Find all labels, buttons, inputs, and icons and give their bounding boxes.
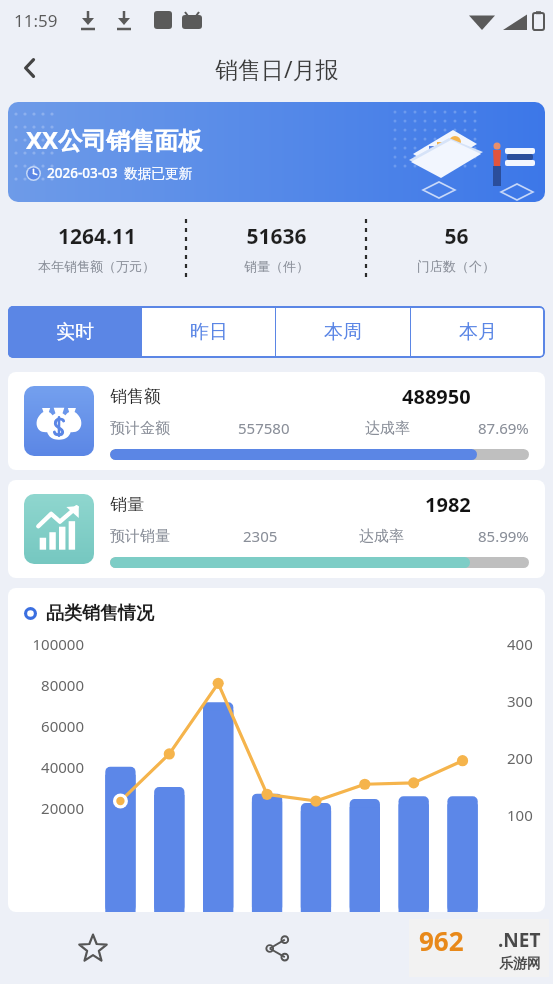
button[interactable]: XX公司销售面板 — [8, 102, 545, 202]
staticText: 预计销量 — [110, 527, 170, 546]
button[interactable]: Back — [6, 44, 54, 92]
staticText: 51636 — [246, 222, 307, 251]
staticText: 60000 — [22, 716, 84, 736]
staticText: 达成率 — [365, 419, 410, 438]
staticText: 85.99% — [478, 526, 529, 546]
staticText: 1982 — [425, 491, 471, 518]
staticText: 100000 — [22, 634, 84, 654]
staticText: 100 — [507, 805, 533, 825]
staticText: 销量（件） — [244, 258, 309, 274]
button[interactable]: 56 — [367, 222, 545, 274]
button[interactable]: 销售额 — [8, 372, 545, 470]
button[interactable]: 昨日 — [142, 306, 275, 358]
staticText: 品类销售情况 — [46, 602, 154, 625]
staticText: 2026-03-03 数据已更新 — [47, 164, 192, 182]
staticText: .NET — [498, 927, 541, 953]
staticText: 2305 — [243, 526, 278, 546]
staticText: 300 — [507, 691, 533, 711]
staticText: 11:59 — [14, 9, 58, 32]
staticText: 销量 — [110, 494, 144, 515]
staticText: 962 — [419, 923, 464, 958]
button[interactable]: Share — [185, 912, 369, 984]
staticText: 乐游网 — [499, 955, 541, 973]
staticText: 56 — [444, 222, 469, 251]
staticText: 本月 — [459, 320, 497, 344]
staticText: 20000 — [22, 798, 84, 818]
button[interactable]: 本周 — [276, 306, 410, 358]
staticText: 昨日 — [190, 320, 228, 344]
staticText: 1264.11 — [58, 222, 136, 251]
staticText: 本周 — [324, 320, 362, 344]
staticText: 预计金额 — [110, 419, 170, 438]
staticText: 80000 — [22, 675, 84, 695]
staticText: 400 — [507, 634, 533, 654]
staticText: 557580 — [238, 418, 290, 438]
staticText: 本年销售额（万元） — [38, 258, 155, 274]
staticText: 488950 — [402, 383, 471, 410]
staticText: 实时 — [56, 320, 94, 344]
button[interactable]: 销量 — [8, 480, 545, 578]
button[interactable]: Favorite — [0, 912, 185, 984]
staticText: 门店数（个） — [417, 258, 495, 274]
button[interactable]: 实时 — [8, 306, 141, 358]
staticText: 达成率 — [359, 527, 404, 546]
staticText: 销售额 — [110, 386, 161, 407]
staticText: XX公司销售面板 — [26, 123, 203, 156]
staticText: 87.69% — [478, 418, 529, 438]
button[interactable]: 本月 — [411, 306, 545, 358]
staticText: 销售日/月报 — [215, 53, 339, 84]
button[interactable]: 51636 — [187, 222, 365, 274]
button[interactable]: 1264.11 — [8, 222, 185, 274]
staticText: 200 — [507, 748, 533, 768]
staticText: 40000 — [22, 757, 84, 777]
